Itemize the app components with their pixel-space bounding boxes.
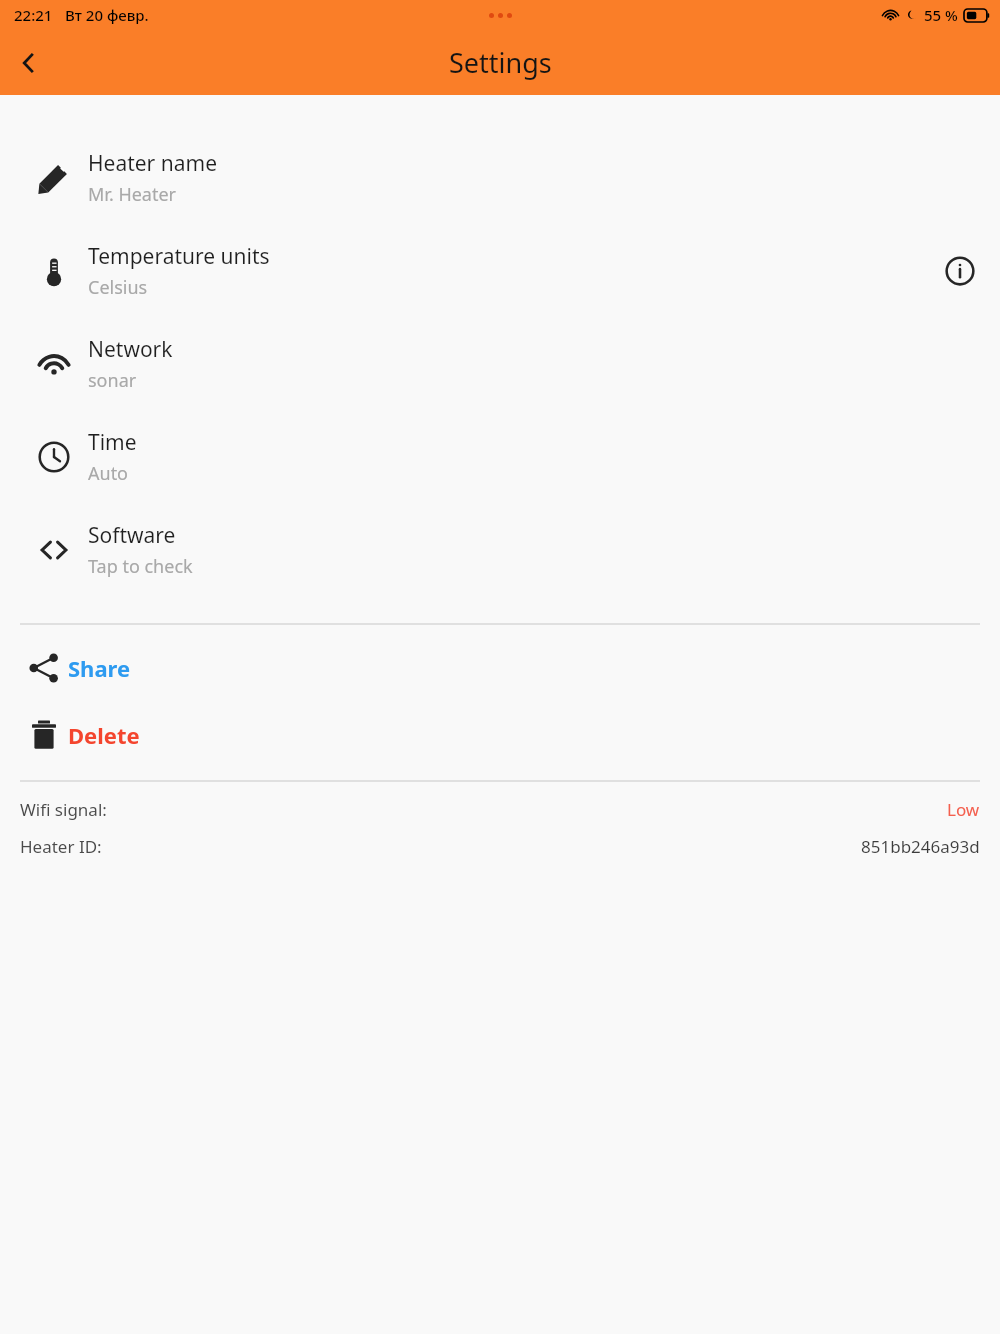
button[interactable]: Network (0, 317, 1000, 410)
button[interactable]: Back (6, 40, 52, 86)
button[interactable]: Software (0, 503, 1000, 596)
staticText: sonar (88, 368, 137, 393)
button[interactable]: Delete (0, 711, 1000, 759)
staticText: Tap to check (88, 554, 193, 579)
staticText: Heater name (88, 149, 217, 178)
staticText: 55 % (924, 5, 958, 25)
button[interactable]: Temperature units (0, 224, 1000, 317)
staticText: Heater ID: (20, 835, 102, 858)
staticText: Delete (68, 720, 140, 750)
staticText: Share (68, 653, 131, 683)
staticText: 851bb246a93d (861, 835, 980, 858)
staticText: Low (947, 798, 980, 821)
staticText: Network (88, 335, 173, 364)
staticText: Mr. Heater (88, 182, 177, 207)
button[interactable]: Share (0, 644, 1000, 692)
staticText: Вт 20 февр. (65, 5, 149, 25)
staticText: 22:21 (14, 5, 53, 25)
staticText: Software (88, 521, 176, 550)
staticText: Temperature units (88, 242, 270, 271)
staticText: Wifi signal: (20, 798, 107, 821)
button[interactable]: Heater name (0, 131, 1000, 224)
button[interactable]: Info (940, 251, 980, 291)
staticText: Celsius (88, 275, 148, 300)
button[interactable]: Time (0, 410, 1000, 503)
staticText: Time (88, 428, 137, 457)
staticText: Settings (449, 44, 552, 81)
staticText: Auto (88, 461, 129, 486)
